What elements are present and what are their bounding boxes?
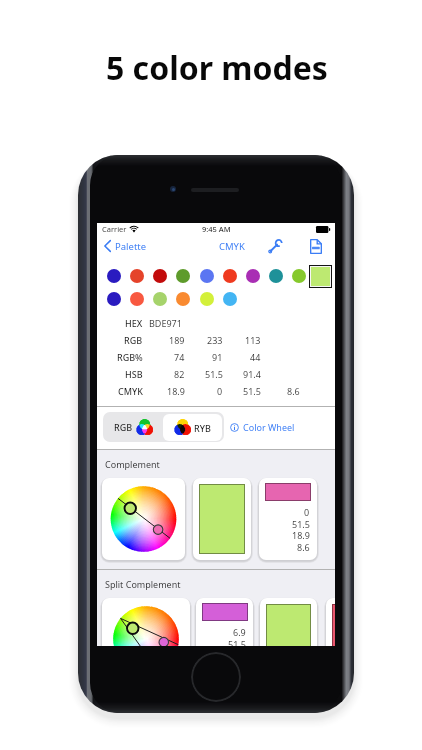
button[interactable] — [176, 292, 190, 306]
staticText: 18.9 — [292, 529, 310, 541]
staticText: 113 — [245, 334, 261, 346]
staticText: 18.9 — [167, 385, 185, 397]
button[interactable] — [107, 269, 121, 283]
staticText: 74 — [174, 351, 185, 363]
button[interactable]: Palette — [102, 235, 149, 257]
staticText: 51.5 — [292, 518, 310, 530]
staticText: 82 — [174, 368, 185, 380]
button[interactable] — [102, 598, 190, 646]
button[interactable]: RGB — [103, 412, 163, 442]
staticText: CMYK — [118, 385, 143, 397]
staticText: RGB — [124, 334, 143, 346]
staticText: 51.5 — [243, 385, 261, 397]
staticText: HSB — [125, 368, 143, 380]
button[interactable] — [153, 292, 167, 306]
staticText: Color Wheel — [243, 421, 295, 433]
button[interactable]: Export PDF — [306, 236, 326, 256]
button[interactable] — [200, 292, 214, 306]
staticText: 91.4 — [243, 368, 261, 380]
staticText: 0 — [304, 506, 310, 518]
staticText: RGB — [114, 421, 133, 433]
button[interactable] — [200, 269, 214, 283]
button[interactable] — [292, 269, 306, 283]
staticText: RYB — [194, 422, 211, 434]
staticText: CMYK — [219, 240, 245, 253]
staticText: 51.5 — [228, 638, 246, 646]
button[interactable] — [223, 292, 237, 306]
staticText: 5 color modes — [106, 46, 328, 90]
button[interactable]: Color Wheel — [230, 417, 295, 437]
staticText: Complement — [105, 458, 160, 470]
button[interactable] — [153, 269, 167, 283]
staticText: 8.6 — [287, 385, 300, 397]
staticText: Carrier — [102, 224, 127, 234]
staticText: 91 — [212, 351, 223, 363]
button[interactable] — [130, 292, 144, 306]
staticText: 51.5 — [205, 368, 223, 380]
button[interactable] — [107, 292, 121, 306]
button[interactable]: 6.9 — [196, 598, 253, 646]
staticText: Split Complement — [105, 578, 181, 590]
staticText: 44 — [250, 351, 261, 363]
staticText: 8.6 — [297, 541, 310, 553]
button[interactable]: CMYK — [212, 236, 252, 256]
staticText: 0 — [217, 385, 223, 397]
staticText: Palette — [115, 240, 147, 253]
button[interactable] — [193, 478, 251, 560]
staticText: 189 — [169, 334, 185, 346]
staticText: BDE971 — [149, 317, 182, 329]
button[interactable] — [269, 269, 283, 283]
button[interactable] — [176, 269, 190, 283]
button[interactable] — [326, 598, 335, 646]
staticText: RGB% — [117, 351, 143, 363]
button[interactable] — [223, 269, 237, 283]
staticText: 9:45 AM — [202, 224, 231, 234]
button[interactable] — [246, 269, 260, 283]
button[interactable] — [260, 598, 317, 646]
button[interactable]: RYB — [163, 414, 222, 441]
button[interactable]: 0 — [259, 478, 317, 560]
staticText: 233 — [207, 334, 223, 346]
button[interactable] — [130, 269, 144, 283]
staticText: 6.9 — [233, 626, 246, 638]
button[interactable]: Settings — [265, 236, 285, 256]
button[interactable] — [102, 478, 185, 560]
staticText: HEX — [125, 317, 143, 329]
